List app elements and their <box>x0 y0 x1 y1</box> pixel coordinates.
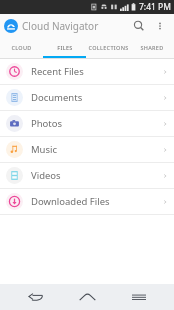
staticText: FILES <box>57 44 73 51</box>
button[interactable]: Music <box>0 137 174 162</box>
staticText: CLOUD <box>11 44 32 51</box>
button[interactable]: Documents <box>0 85 174 110</box>
button[interactable]: SHARED <box>130 38 174 56</box>
button[interactable]: Downloaded Files <box>0 189 174 214</box>
staticText: 7:41 PM <box>139 1 171 13</box>
button[interactable]: Search <box>128 15 150 37</box>
staticText: Cloud Navigator <box>22 19 99 33</box>
button[interactable]: More options <box>150 16 170 36</box>
staticText: SHARED <box>140 44 164 51</box>
staticText: Recent Files <box>31 65 84 78</box>
staticText: Videos <box>31 169 61 182</box>
staticText: COLLECTIONS <box>88 44 129 51</box>
button[interactable]: Photos <box>0 111 174 136</box>
button[interactable]: CLOUD <box>0 38 43 56</box>
staticText: Photos <box>31 117 63 130</box>
staticText: Music <box>31 143 58 156</box>
button[interactable]: Recent apps <box>122 284 156 310</box>
button[interactable]: Recent Files <box>0 59 174 84</box>
button[interactable]: COLLECTIONS <box>86 38 130 56</box>
button[interactable]: Home <box>70 284 104 310</box>
staticText: Downloaded Files <box>31 195 110 208</box>
button[interactable]: Back <box>18 284 52 310</box>
button[interactable]: FILES <box>43 38 86 56</box>
staticText: Documents <box>31 91 83 104</box>
button[interactable]: Videos <box>0 163 174 188</box>
